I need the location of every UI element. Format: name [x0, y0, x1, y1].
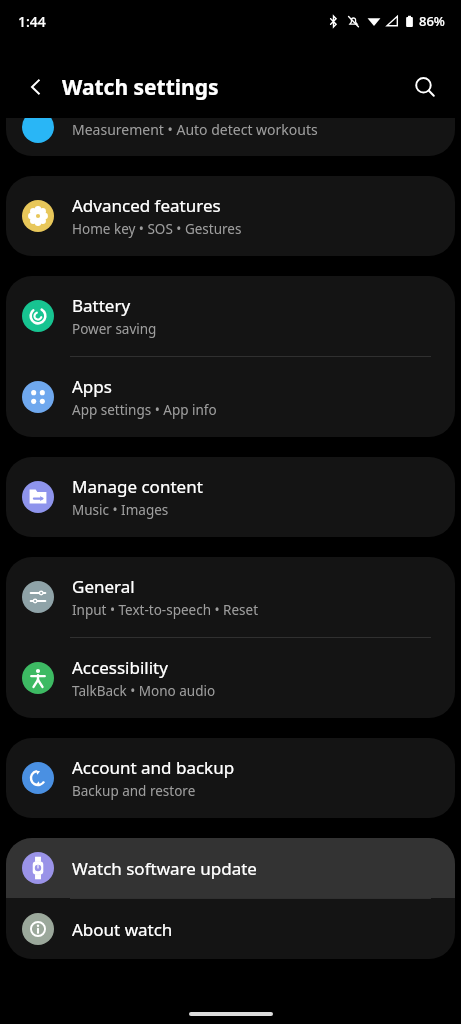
staticText: General — [72, 575, 135, 598]
button[interactable]: Battery — [6, 276, 455, 356]
button[interactable]: Advanced features — [6, 176, 455, 256]
staticText: Measurement • Auto detect workouts — [72, 120, 318, 139]
staticText: 86% — [419, 12, 445, 30]
button[interactable]: Back — [14, 65, 58, 109]
staticText: TalkBack • Mono audio — [72, 682, 216, 700]
staticText: Music • Images — [72, 501, 169, 519]
button[interactable]: Search — [403, 65, 447, 109]
staticText: App settings • App info — [72, 401, 217, 419]
button[interactable]: Measurement • Auto detect workouts — [6, 118, 455, 156]
staticText: Home key • SOS • Gestures — [72, 220, 242, 238]
staticText: Manage content — [72, 475, 203, 498]
button[interactable]: General — [6, 557, 455, 637]
staticText: Battery — [72, 294, 131, 317]
staticText: Input • Text-to-speech • Reset — [72, 601, 259, 619]
button[interactable]: Manage content — [6, 457, 455, 537]
staticText: Account and backup — [72, 756, 235, 779]
staticText: Advanced features — [72, 194, 221, 217]
staticText: Apps — [72, 375, 112, 398]
staticText: About watch — [72, 918, 173, 941]
staticText: Watch settings — [62, 73, 219, 102]
staticText: Power saving — [72, 320, 157, 338]
button[interactable]: Watch software update — [6, 838, 455, 898]
staticText: Accessibility — [72, 656, 168, 679]
button[interactable]: Apps — [6, 357, 455, 437]
staticText: 1:44 — [18, 12, 46, 31]
staticText: Watch software update — [72, 857, 257, 880]
button[interactable]: Account and backup — [6, 738, 455, 818]
button[interactable]: Accessibility — [6, 638, 455, 718]
button[interactable]: About watch — [6, 899, 455, 959]
staticText: Backup and restore — [72, 782, 196, 800]
